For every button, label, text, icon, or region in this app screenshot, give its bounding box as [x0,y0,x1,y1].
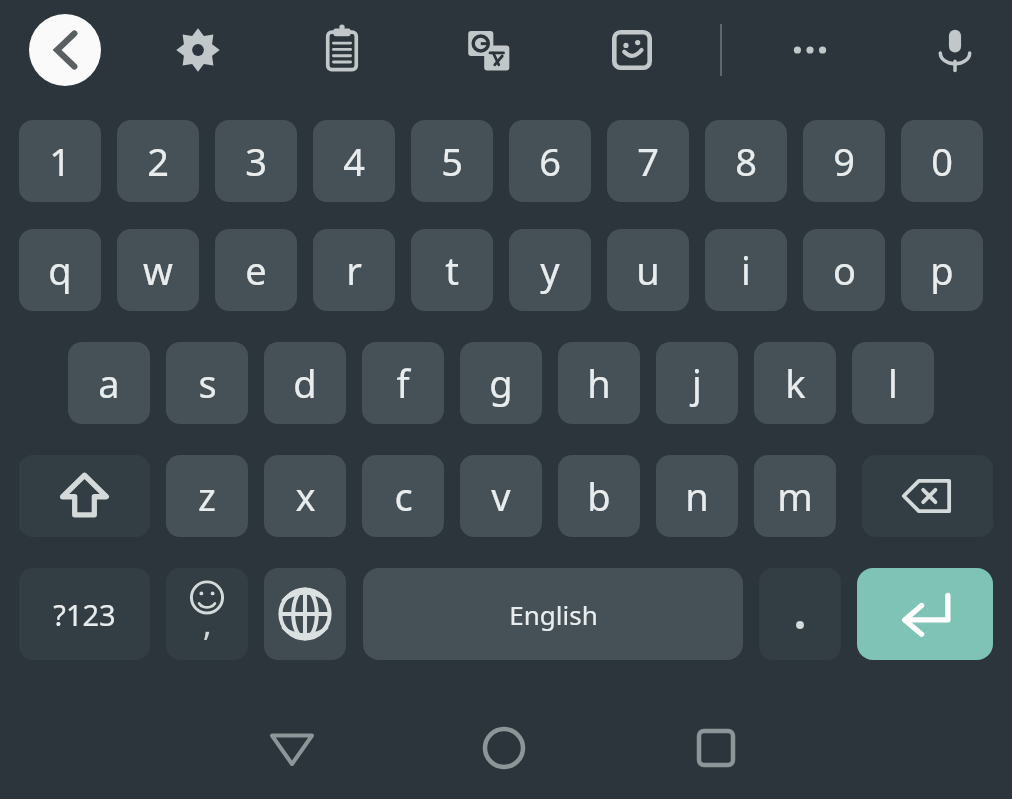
staticText: w [143,244,173,296]
staticText: f [396,357,410,409]
staticText: z [198,470,216,522]
staticText: 2 [147,135,169,187]
staticText: l [888,357,898,409]
staticText: a [98,357,120,409]
staticText: 1 [49,135,71,187]
button[interactable]: Back [252,712,332,784]
button[interactable]: Stickers [598,16,666,84]
button[interactable]: k [754,342,836,424]
staticText: c [394,470,413,522]
staticText: q [48,244,72,296]
staticText: b [587,470,611,522]
staticText: p [930,244,954,296]
button[interactable]: e [215,229,297,311]
staticText: v [491,470,511,522]
button[interactable]: 3 [215,120,297,202]
button[interactable]: y [509,229,591,311]
button[interactable]: 5 [411,120,493,202]
button[interactable]: z [166,455,248,537]
button[interactable]: a [68,342,150,424]
button[interactable]: t [411,229,493,311]
staticText: ?123 [53,595,116,634]
staticText: English [509,597,598,632]
staticText: 4 [343,135,365,187]
button[interactable]: g [460,342,542,424]
button[interactable]: More options [776,16,844,84]
button[interactable]: n [656,455,738,537]
button[interactable]: Enter [857,568,993,660]
staticText: o [833,244,856,296]
staticText: d [293,357,317,409]
staticText: 9 [833,135,855,187]
staticText: e [245,244,267,296]
button[interactable]: w [117,229,199,311]
staticText: 6 [539,135,561,187]
button[interactable]: Shift [19,455,150,537]
button[interactable]: o [803,229,885,311]
button[interactable]: Translate [454,16,522,84]
button[interactable]: 8 [705,120,787,202]
button[interactable]: Back [29,14,101,86]
button[interactable]: d [264,342,346,424]
button[interactable]: 4 [313,120,395,202]
button[interactable]: m [754,455,836,537]
button[interactable]: c [362,455,444,537]
button[interactable]: 9 [803,120,885,202]
staticText: s [198,357,217,409]
button[interactable]: 2 [117,120,199,202]
staticText: , [203,602,212,646]
button[interactable]: Change keyboard language [264,568,346,660]
staticText: 7 [637,135,659,187]
button[interactable]: ?123 [19,568,150,660]
staticText: y [540,244,560,296]
staticText: m [777,470,813,522]
button[interactable]: j [656,342,738,424]
staticText: k [785,357,806,409]
button[interactable]: Emoji and comma [166,568,248,660]
button[interactable]: Home [464,712,544,784]
staticText: r [346,244,362,296]
button[interactable]: s [166,342,248,424]
button[interactable]: Clipboard [308,16,376,84]
button[interactable]: English [363,568,743,660]
button[interactable]: u [607,229,689,311]
button[interactable]: f [362,342,444,424]
button[interactable]: v [460,455,542,537]
staticText: 5 [441,135,463,187]
button[interactable]: h [558,342,640,424]
staticText: h [587,357,611,409]
button[interactable]: Voice input [921,16,989,84]
staticText: 3 [245,135,267,187]
button[interactable]: 1 [19,120,101,202]
button[interactable]: 7 [607,120,689,202]
button[interactable]: Period [759,568,841,660]
button[interactable]: r [313,229,395,311]
staticText: n [685,470,709,522]
button[interactable]: Settings [164,16,232,84]
staticText: 0 [931,135,953,187]
staticText: u [636,244,660,296]
staticText: i [741,244,751,296]
staticText: t [445,244,459,296]
button[interactable]: 6 [509,120,591,202]
button[interactable]: Backspace [862,455,993,537]
staticText: g [489,357,513,409]
button[interactable]: i [705,229,787,311]
button[interactable]: x [264,455,346,537]
staticText: 8 [735,135,757,187]
button[interactable]: q [19,229,101,311]
staticText: j [692,357,702,409]
staticText: x [295,470,316,522]
button[interactable]: 0 [901,120,983,202]
button[interactable]: Recent apps [676,712,756,784]
button[interactable]: l [852,342,934,424]
button[interactable]: b [558,455,640,537]
button[interactable]: p [901,229,983,311]
